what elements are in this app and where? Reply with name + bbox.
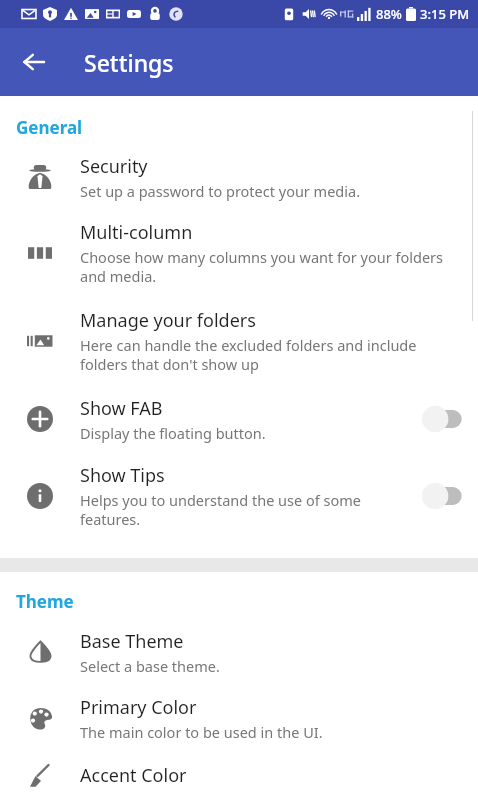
staticText: 3:15 PM [420,5,470,23]
staticText: Theme [16,590,74,613]
staticText: Display the floating button. [80,423,266,443]
staticText: Select a base theme. [80,656,220,676]
staticText: Manage your folders [80,308,256,333]
staticText: 88% [376,5,402,23]
staticText: Security [80,154,148,179]
staticText: Helps you to understand the use of some … [80,490,361,529]
button[interactable]: Accent Color [0,751,478,800]
staticText: Choose how many columns you want for you… [80,247,443,286]
button[interactable]: Multi-column [0,209,478,297]
button[interactable]: Show Tips [0,453,478,539]
button[interactable] [418,404,470,434]
staticText: Base Theme [80,629,184,654]
button[interactable]: Back [10,38,58,86]
staticText: Accent Color [80,763,187,788]
staticText: General [16,116,83,139]
staticText: Primary Color [80,695,197,720]
button[interactable]: Manage your folders [0,297,478,385]
staticText: Set up a password to protect your media. [80,181,361,201]
button[interactable] [418,481,470,511]
staticText: Settings [84,47,174,78]
button[interactable]: Primary Color [0,685,478,751]
button[interactable]: Base Theme [0,619,478,685]
staticText: Here can handle the excluded folders and… [80,335,417,374]
button[interactable]: Show FAB [0,385,478,453]
staticText: The main color to be used in the UI. [80,722,323,742]
staticText: Show Tips [80,463,165,488]
staticText: Multi-column [80,220,193,245]
staticText: Show FAB [80,396,163,421]
button[interactable]: Security [0,145,478,209]
